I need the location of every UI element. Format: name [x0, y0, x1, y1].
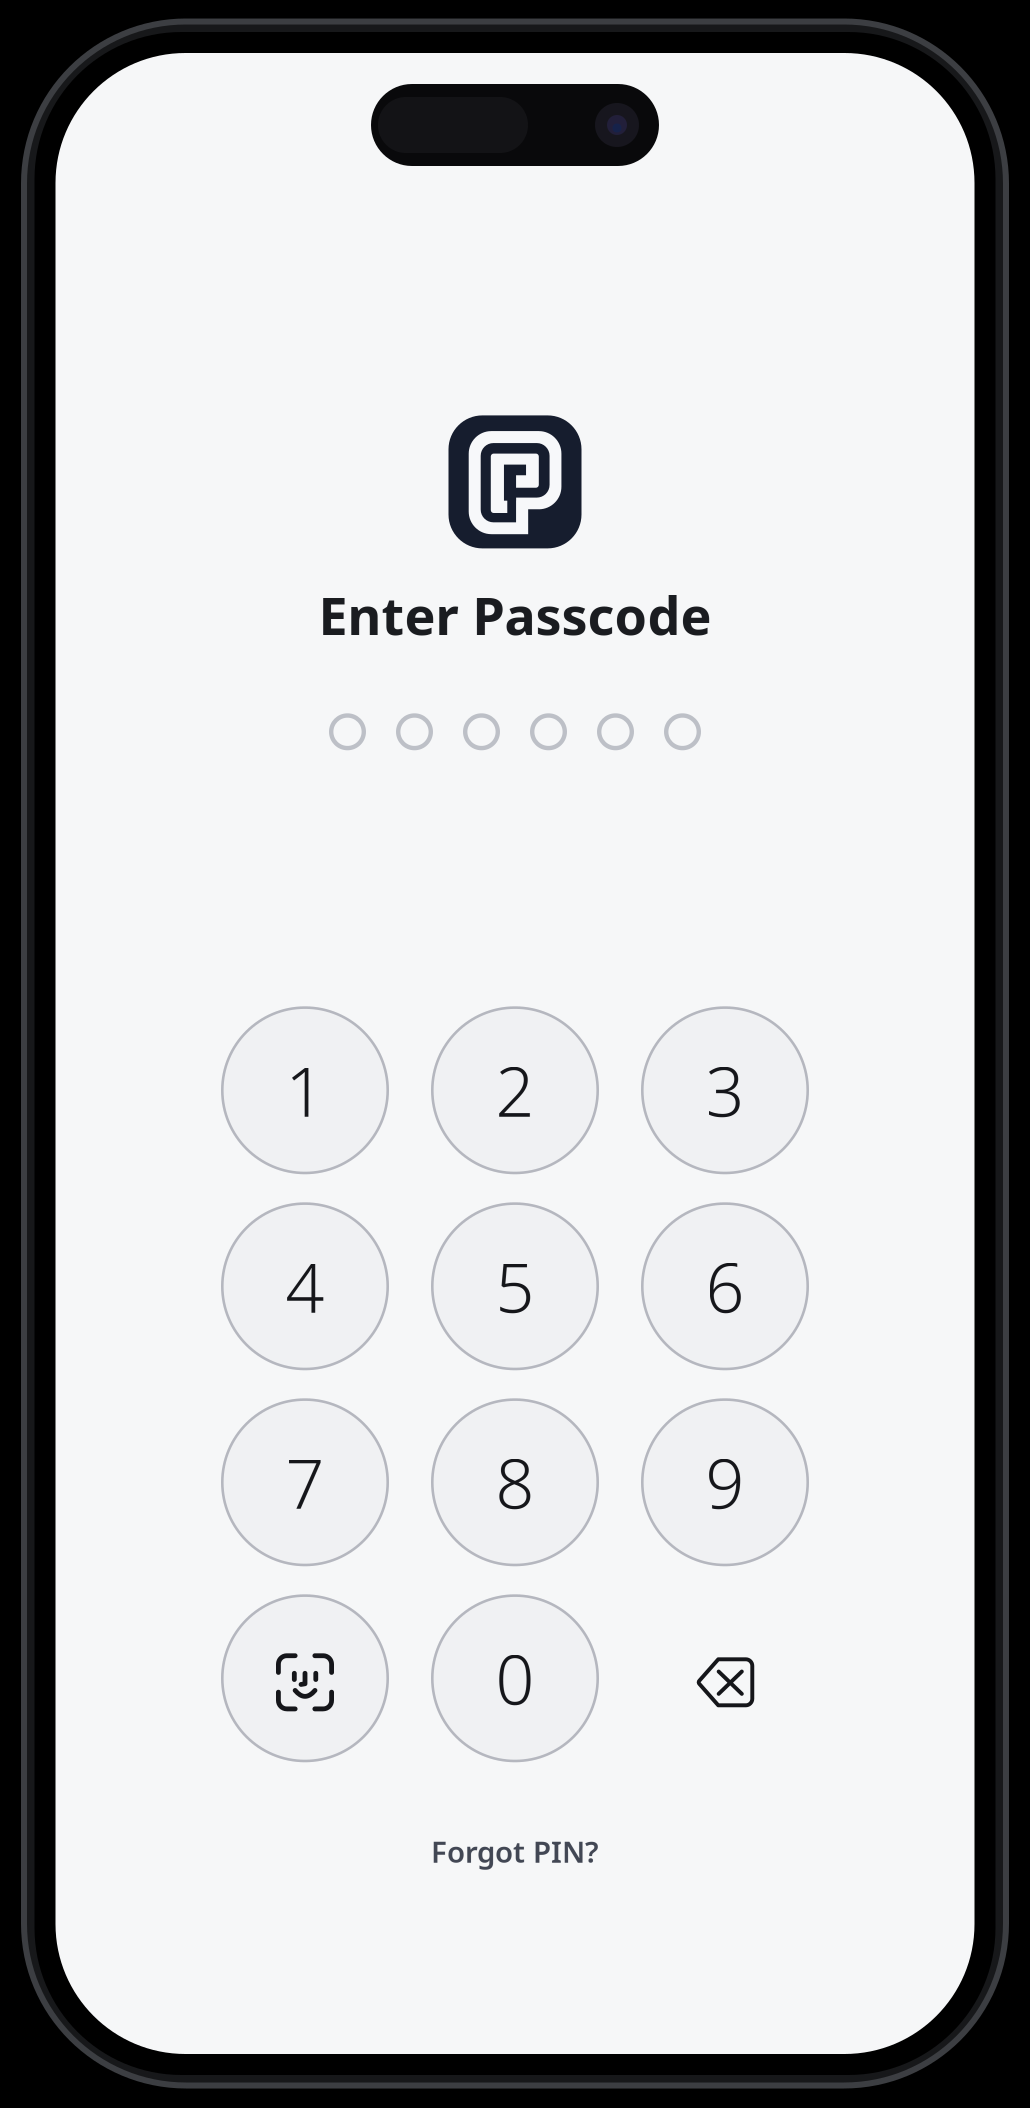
staticText: 7	[285, 1437, 324, 1527]
staticText: 5	[495, 1241, 534, 1331]
button[interactable]: 9	[641, 1398, 809, 1566]
button[interactable]: 2	[431, 1006, 599, 1174]
staticText: 8	[495, 1437, 534, 1527]
button[interactable]: Forgot PIN?	[431, 1832, 599, 1871]
button[interactable]: 4	[221, 1202, 389, 1370]
button[interactable]: Face ID	[221, 1594, 389, 1762]
staticText: 6	[705, 1241, 744, 1331]
button[interactable]: 5	[431, 1202, 599, 1370]
button[interactable]: 1	[221, 1006, 389, 1174]
staticText: 3	[705, 1045, 744, 1135]
button[interactable]: 3	[641, 1006, 809, 1174]
staticText: 4	[285, 1241, 324, 1331]
button[interactable]: Delete	[641, 1594, 809, 1762]
staticText: 9	[705, 1437, 744, 1527]
button[interactable]: 0	[431, 1594, 599, 1762]
staticText: Enter Passcode	[318, 580, 711, 649]
button[interactable]: 6	[641, 1202, 809, 1370]
button[interactable]: 8	[431, 1398, 599, 1566]
staticText: 1	[285, 1045, 324, 1135]
button[interactable]: 7	[221, 1398, 389, 1566]
staticText: Forgot PIN?	[431, 1832, 599, 1871]
staticText: 0	[495, 1633, 534, 1723]
staticText: 2	[495, 1045, 534, 1135]
